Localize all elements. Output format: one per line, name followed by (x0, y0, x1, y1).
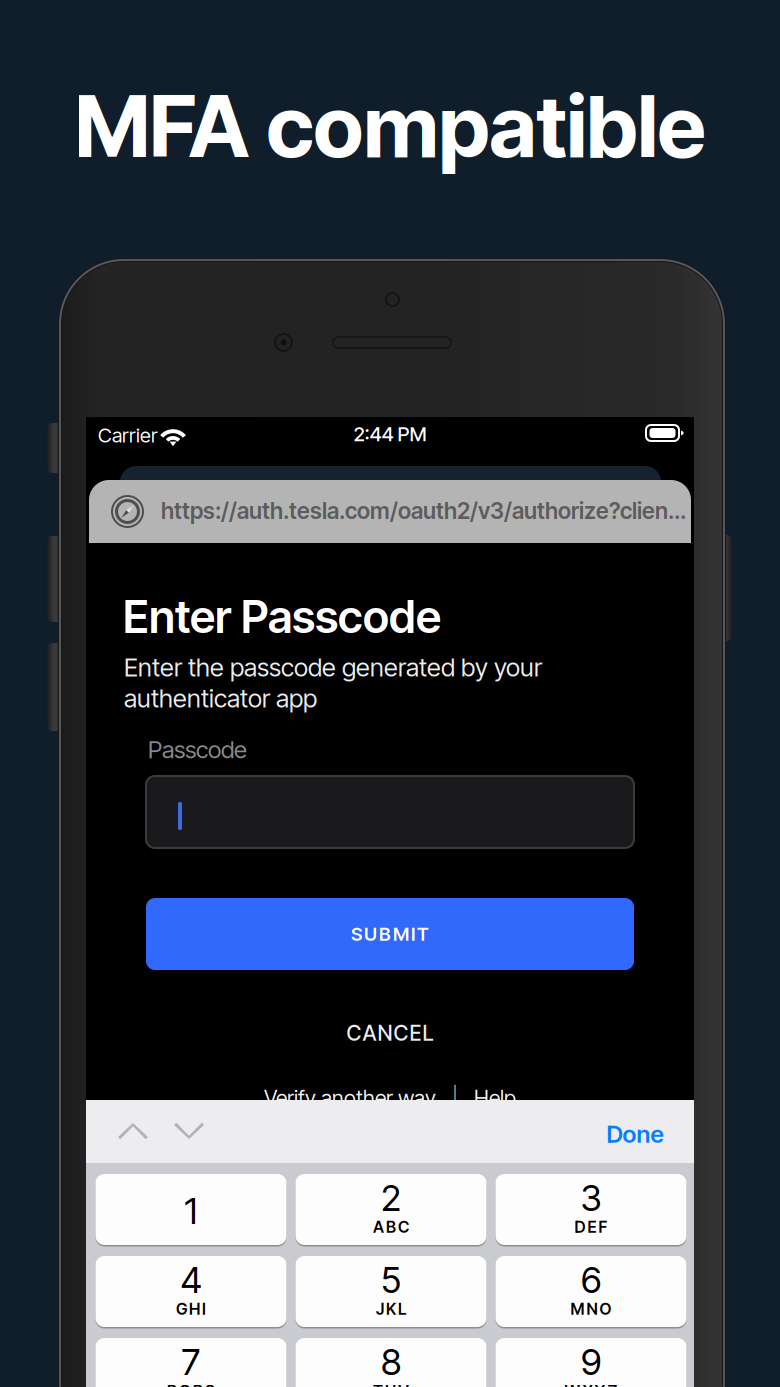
staticText: 8 (381, 1340, 401, 1384)
button[interactable]: Done (592, 1110, 678, 1158)
button[interactable]: 8 (295, 1338, 486, 1387)
staticText: 6 (581, 1258, 601, 1302)
staticText: | (452, 1085, 458, 1111)
staticText: 9 (581, 1340, 601, 1384)
staticText: S U B M I T (351, 923, 429, 945)
button[interactable]: 5 (295, 1256, 486, 1329)
button[interactable]: 3 (495, 1174, 686, 1247)
staticText: Enter Passcode (123, 589, 441, 644)
staticText: D E F (574, 1217, 607, 1237)
staticText: M N O (570, 1299, 611, 1319)
staticText: Help (474, 1085, 516, 1111)
staticText: Enter the passcode generated by your (124, 652, 542, 683)
staticText: 7 (181, 1340, 200, 1384)
staticText: J K L (376, 1299, 406, 1319)
staticText: 2:44 PM (353, 422, 426, 446)
button[interactable]: Next field (161, 1108, 217, 1156)
staticText: Carrier (98, 423, 158, 447)
staticText: MFA compatible (74, 74, 705, 178)
button[interactable]: 6 (495, 1256, 686, 1329)
button[interactable]: C A N C E L (260, 1010, 520, 1056)
staticText: G H I (176, 1299, 206, 1319)
staticText: authenticator app (124, 683, 317, 714)
staticText: 4 (180, 1258, 201, 1302)
staticText: Verify another way (264, 1085, 436, 1111)
staticText: Passcode (148, 735, 247, 764)
staticText: T U V (373, 1381, 409, 1387)
button[interactable]: 2 (295, 1174, 486, 1247)
button[interactable]: 4 (95, 1256, 286, 1329)
button[interactable]: 9 (495, 1338, 686, 1387)
button[interactable]: https://auth.tesla.com/oauth2/v3/authori… (89, 480, 691, 543)
staticText: C A N C E L (346, 1020, 433, 1046)
staticText: 2 (381, 1176, 401, 1220)
button[interactable]: Help (474, 1085, 516, 1111)
button[interactable]: Verify another way (264, 1085, 436, 1111)
staticText: 1 (184, 1189, 197, 1233)
staticText: W X Y Z (564, 1381, 617, 1387)
staticText: Done (606, 1119, 663, 1148)
staticText: A B C (373, 1217, 409, 1237)
button[interactable]: S U B M I T (146, 898, 634, 970)
staticText: 3 (580, 1176, 601, 1220)
button[interactable]: 1 (95, 1174, 286, 1247)
button[interactable]: Previous field (105, 1108, 161, 1156)
staticText: https://auth.tesla.com/oauth2/v3/authori… (161, 497, 686, 524)
button[interactable]: 7 (95, 1338, 286, 1387)
staticText: 5 (381, 1258, 401, 1302)
staticText: P Q R S (167, 1381, 215, 1387)
